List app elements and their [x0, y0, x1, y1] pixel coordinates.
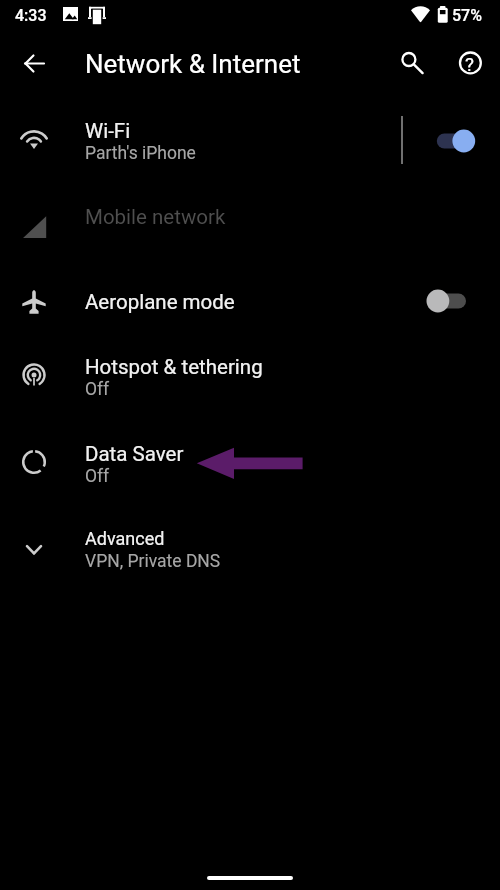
button[interactable]: Aeroplane mode off	[426, 289, 474, 313]
staticText: Advanced	[85, 528, 165, 549]
button[interactable]: Mobile network	[0, 179, 500, 255]
button[interactable]: Data Saver	[0, 424, 500, 500]
staticText: VPN, Private DNS	[85, 551, 221, 572]
button[interactable]: Help	[447, 37, 495, 85]
staticText: ?	[465, 53, 474, 75]
staticText: Wi-Fi	[85, 119, 131, 143]
staticText: Data Saver	[85, 442, 184, 466]
staticText: 57%	[452, 6, 482, 25]
button[interactable]: Search	[387, 37, 435, 85]
button[interactable]: Advanced	[0, 510, 500, 586]
button[interactable]: Aeroplane mode	[0, 264, 500, 340]
staticText: Aeroplane mode	[85, 290, 235, 314]
staticText: 4:33	[15, 6, 47, 25]
button[interactable]: Back	[10, 39, 58, 87]
staticText: Off	[85, 466, 110, 487]
button[interactable]: Wi-Fi	[0, 102, 500, 178]
staticText: Mobile network	[85, 205, 226, 229]
staticText: Off	[85, 379, 110, 400]
staticText: Hotspot & tethering	[85, 355, 263, 379]
button[interactable]: Hotspot & tethering	[0, 337, 500, 413]
staticText: Parth's iPhone	[85, 143, 196, 164]
staticText: Network & Internet	[85, 49, 301, 79]
button[interactable]: Wi-Fi on	[432, 129, 480, 153]
